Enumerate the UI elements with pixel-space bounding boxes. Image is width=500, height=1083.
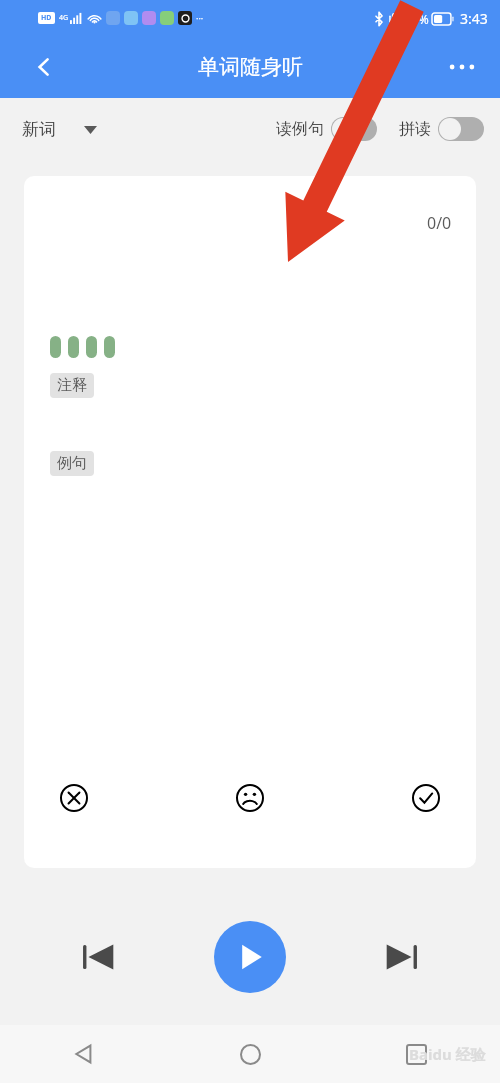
button[interactable]: Previous bbox=[70, 929, 126, 985]
button[interactable]: Unsure bbox=[228, 776, 272, 820]
button[interactable]: Next bbox=[374, 929, 430, 985]
staticText: 0/0 bbox=[427, 212, 452, 234]
button[interactable]: Play bbox=[214, 921, 286, 993]
button[interactable]: 0/0 bbox=[24, 176, 476, 868]
staticText: 拼读 bbox=[399, 119, 431, 139]
button[interactable]: More options bbox=[440, 45, 484, 89]
staticText: 例句 bbox=[57, 454, 87, 473]
button[interactable]: Recents bbox=[392, 1030, 440, 1078]
button[interactable]: 注释 bbox=[57, 376, 87, 395]
staticText: Baidu 经验 bbox=[409, 1044, 486, 1064]
button[interactable]: 新词 bbox=[22, 119, 97, 140]
staticText: HD bbox=[41, 13, 52, 23]
staticText: 注释 bbox=[57, 376, 87, 395]
button[interactable]: Back bbox=[60, 1030, 108, 1078]
staticText: 新词 bbox=[22, 119, 56, 140]
staticText: ··· bbox=[196, 12, 204, 24]
button[interactable]: 读例句 bbox=[276, 117, 377, 141]
staticText: 55% bbox=[405, 11, 429, 27]
button[interactable]: 拼读 bbox=[399, 117, 484, 141]
button[interactable]: Wrong bbox=[52, 776, 96, 820]
button[interactable]: Back bbox=[22, 45, 66, 89]
button[interactable]: Correct bbox=[404, 776, 448, 820]
button[interactable]: Home bbox=[226, 1030, 274, 1078]
staticText: 读例句 bbox=[276, 119, 324, 139]
staticText: 单词随身听 bbox=[198, 54, 303, 80]
button[interactable]: 例句 bbox=[57, 454, 87, 473]
staticText: 3:43 bbox=[460, 9, 488, 28]
staticText: 4G bbox=[59, 13, 69, 23]
